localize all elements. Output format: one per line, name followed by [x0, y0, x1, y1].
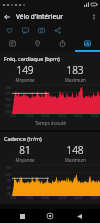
staticText: Cadence (tr/m) — [4, 135, 42, 142]
button[interactable]: J'aime — [1, 23, 17, 37]
staticText: 125 — [5, 103, 11, 108]
staticText: 10:00 — [25, 196, 34, 200]
staticText: 50:00 — [91, 196, 100, 200]
staticText: Vélo d'intérieur — [16, 12, 63, 21]
staticText: 0:00 — [10, 196, 17, 200]
staticText: 90 — [7, 178, 11, 183]
staticText: 175 — [5, 91, 11, 96]
staticText: Moyenne — [15, 157, 35, 163]
staticText: 148 — [66, 143, 84, 157]
staticText: 20:00 — [41, 114, 50, 118]
staticText: 200 — [5, 85, 11, 90]
staticText: Maximum — [65, 157, 86, 163]
staticText: 120 — [5, 172, 11, 177]
staticText: Moyenne — [15, 77, 35, 83]
staticText: 149 — [16, 63, 34, 77]
staticText: 40:00 — [74, 196, 83, 200]
button[interactable]: Graphiques — [75, 37, 100, 50]
button[interactable]: Tours — [50, 37, 75, 50]
staticText: 81 — [19, 143, 31, 157]
staticText: Temps écoulé — [35, 120, 66, 127]
button[interactable]: Retour — [72, 209, 86, 223]
button[interactable]: Plus d'options — [87, 10, 100, 23]
staticText: 0:00 — [10, 114, 17, 118]
button[interactable]: Photos — [33, 23, 49, 37]
button[interactable]: Commenter — [17, 23, 33, 37]
staticText: 40:00 — [74, 114, 83, 118]
staticText: Maximum — [65, 77, 86, 83]
button[interactable]: Accueil — [43, 209, 57, 223]
button[interactable]: Retour — [0, 10, 13, 23]
staticText: 30:00 — [58, 196, 67, 200]
staticText: 50:00 — [91, 114, 100, 118]
staticText: 20:00 — [41, 196, 50, 200]
staticText: 150 — [5, 165, 11, 170]
button[interactable]: Résumé — [0, 37, 25, 50]
staticText: Fréq. cardiaque (bpm) — [4, 55, 60, 62]
button[interactable]: Récents — [15, 209, 29, 223]
staticText: 183 — [66, 63, 84, 77]
staticText: 60 — [7, 185, 11, 190]
staticText: 30:00 — [58, 114, 67, 118]
button[interactable]: Partager — [49, 23, 65, 37]
staticText: 30 — [7, 191, 11, 196]
button[interactable]: Carte — [25, 37, 50, 50]
staticText: 100 — [5, 109, 11, 114]
staticText: 10:00 — [25, 114, 34, 118]
staticText: 150 — [5, 97, 11, 102]
